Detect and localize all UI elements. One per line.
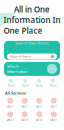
staticText: Label (36, 118, 43, 122)
staticText: Label (50, 105, 57, 108)
staticText: All in One (14, 4, 50, 15)
staticText: Item (22, 84, 28, 87)
staticText: Get Your (7, 57, 22, 62)
staticText: Vehicle Information (7, 64, 27, 74)
staticText: Label (50, 118, 57, 122)
staticText: Label (21, 105, 28, 108)
staticText: Search here (10, 54, 31, 59)
staticText: In One Place (7, 75, 28, 80)
staticText: Search Your Vehicle (15, 40, 49, 45)
staticText: Information In One Place (3, 15, 60, 36)
staticText: All Services (5, 90, 26, 96)
staticText: Item (8, 84, 14, 87)
staticText: Label (7, 118, 14, 122)
staticText: Label (36, 105, 43, 108)
staticText: Label (7, 105, 14, 108)
staticText: Item (50, 84, 56, 87)
staticText: Label (21, 118, 28, 122)
staticText: Item (36, 84, 42, 87)
